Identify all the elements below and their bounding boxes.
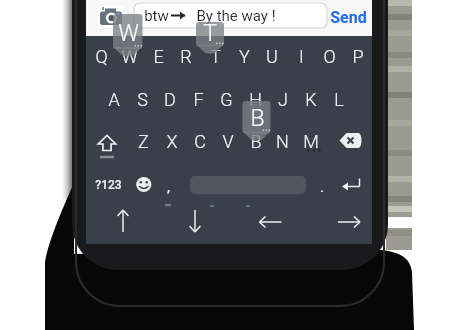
staticText: K [305, 89, 317, 110]
staticText: B [250, 131, 262, 152]
button[interactable] [134, 3, 327, 28]
staticText: Y [239, 46, 250, 67]
staticText: L [334, 89, 344, 110]
button[interactable] [158, 203, 229, 244]
button[interactable] [196, 22, 224, 54]
button[interactable]: U [258, 39, 286, 73]
button[interactable] [334, 165, 372, 203]
staticText: Z [138, 131, 149, 152]
staticText: B [250, 105, 265, 132]
button[interactable] [113, 14, 143, 56]
button[interactable]: B [242, 124, 269, 158]
button[interactable]: X [158, 124, 185, 158]
staticText: D [164, 89, 176, 110]
button[interactable]: R [172, 39, 200, 73]
button[interactable]: A [100, 82, 128, 116]
staticText: . [320, 178, 324, 196]
staticText: T [210, 46, 221, 67]
button[interactable] [87, 120, 129, 161]
button[interactable]: F [184, 82, 212, 116]
staticText: I [299, 46, 304, 67]
button[interactable]: , [156, 170, 180, 204]
button[interactable]: W [115, 39, 143, 73]
staticText: R [180, 46, 192, 67]
staticText: E [153, 46, 164, 67]
button[interactable] [243, 101, 271, 141]
button[interactable]: J [269, 82, 297, 116]
button[interactable] [330, 120, 372, 161]
staticText: By the way ! [196, 7, 276, 25]
button[interactable]: Q [87, 39, 115, 73]
button[interactable]: V [214, 124, 241, 158]
staticText: , [167, 178, 170, 196]
staticText: Send [330, 8, 367, 27]
button[interactable]: O [315, 39, 343, 73]
button[interactable]: ?123 [78, 168, 138, 202]
staticText: F [193, 89, 204, 110]
staticText: ?123 [95, 178, 122, 192]
staticText: G [220, 89, 233, 110]
button[interactable] [130, 165, 158, 203]
staticText: W [121, 46, 138, 67]
staticText: O [323, 46, 336, 67]
staticText: J [278, 89, 288, 110]
button[interactable]: S [128, 82, 156, 116]
staticText: N [276, 131, 289, 152]
button[interactable]: C [186, 124, 213, 158]
staticText: Q [95, 46, 108, 67]
button[interactable]: Send [313, 0, 383, 34]
button[interactable] [300, 203, 372, 244]
staticText: T [203, 20, 217, 47]
button[interactable]: D [156, 82, 184, 116]
button[interactable]: G [212, 82, 240, 116]
staticText: H [249, 89, 262, 110]
staticText: btw [144, 7, 169, 25]
staticText: M [303, 131, 319, 152]
staticText: A [108, 89, 120, 110]
button[interactable]: N [269, 124, 296, 158]
button[interactable] [98, 4, 124, 30]
button[interactable]: T [201, 39, 229, 73]
button[interactable]: L [325, 82, 353, 116]
button[interactable]: . [310, 170, 334, 204]
staticText: V [222, 131, 234, 152]
staticText: W [118, 20, 139, 47]
button[interactable]: I [287, 39, 315, 73]
button[interactable]: M [297, 124, 324, 158]
button[interactable]: K [297, 82, 325, 116]
button[interactable]: H [241, 82, 269, 116]
button[interactable]: Y [230, 39, 258, 73]
button[interactable] [229, 203, 300, 244]
staticText: U [266, 46, 278, 67]
button[interactable]: P [344, 39, 372, 73]
button[interactable] [87, 203, 158, 244]
staticText: P [352, 46, 364, 67]
button[interactable] [86, 36, 372, 244]
staticText: X [166, 131, 178, 152]
button[interactable]: E [144, 39, 172, 73]
staticText: C [194, 131, 206, 152]
button[interactable]: Z [130, 124, 157, 158]
staticText: S [137, 89, 148, 110]
